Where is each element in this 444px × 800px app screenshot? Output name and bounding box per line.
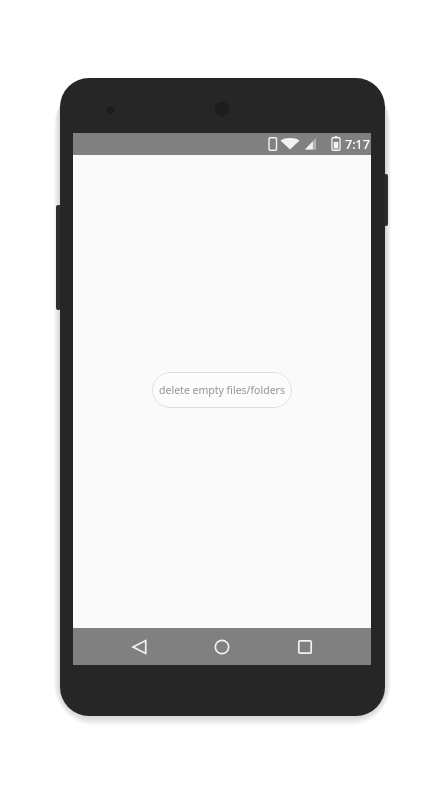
staticText: 7:17	[345, 136, 370, 153]
button[interactable]: Back	[118, 628, 162, 665]
staticText: delete empty files/folders	[159, 383, 285, 397]
button[interactable]: delete empty files/folders	[152, 372, 292, 408]
button[interactable]: Recent apps	[283, 628, 327, 665]
button[interactable]: Home	[200, 628, 244, 665]
